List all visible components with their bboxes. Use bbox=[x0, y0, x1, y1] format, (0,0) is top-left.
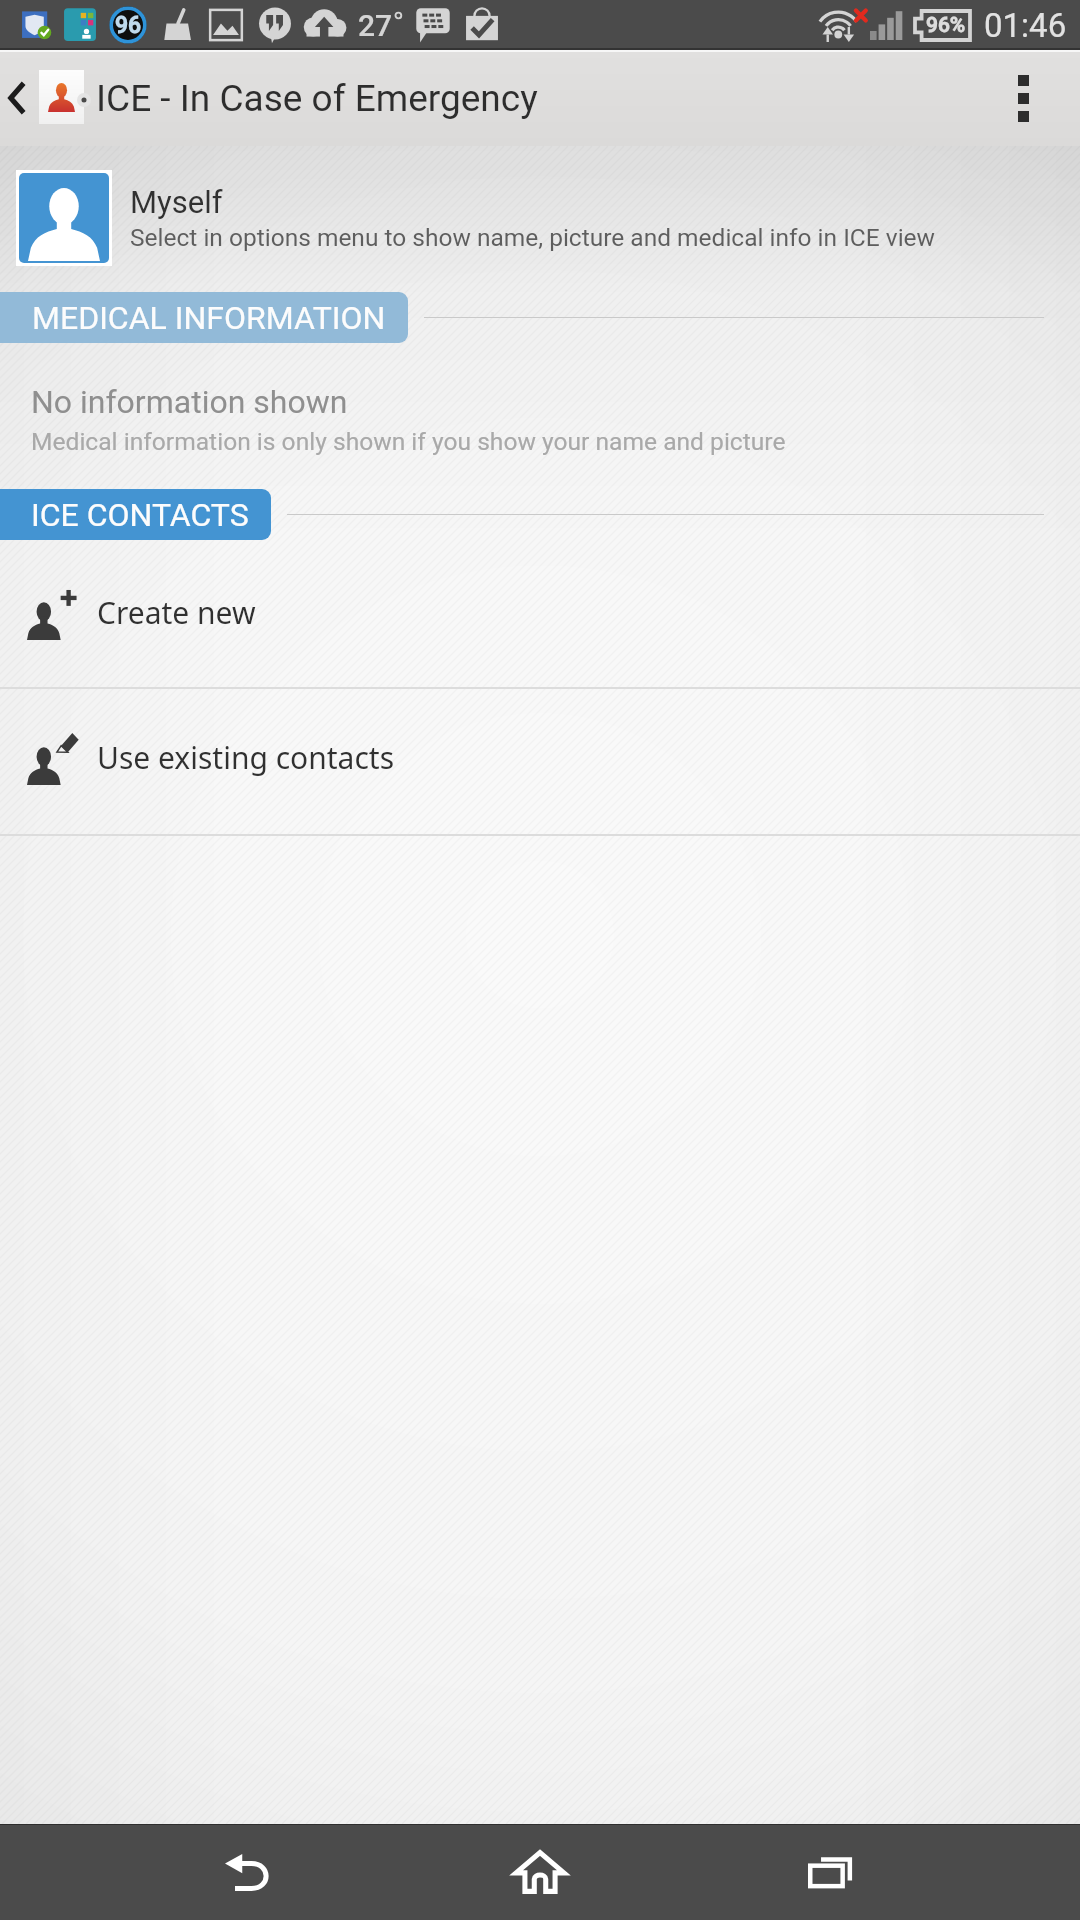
button[interactable]: Myself bbox=[0, 170, 1080, 266]
button[interactable]: Recent apps bbox=[685, 1824, 975, 1920]
staticText: ICE CONTACTS bbox=[31, 496, 249, 534]
staticText: 96 bbox=[115, 12, 142, 39]
staticText: Myself bbox=[130, 184, 223, 220]
button[interactable]: Home bbox=[395, 1824, 685, 1920]
button[interactable]: Navigate up bbox=[0, 50, 96, 146]
staticText: 27 bbox=[358, 8, 393, 43]
staticText: Select in options menu to show name, pic… bbox=[130, 223, 935, 252]
button[interactable]: More options bbox=[967, 50, 1080, 146]
staticText: Create new bbox=[97, 592, 256, 633]
staticText: Medical information is only shown if you… bbox=[31, 427, 786, 456]
staticText: ICE - In Case of Emergency bbox=[96, 77, 538, 120]
staticText: Use existing contacts bbox=[97, 737, 395, 778]
button[interactable]: Use existing contacts bbox=[0, 689, 1080, 834]
staticText: 01:46 bbox=[984, 6, 1067, 45]
button[interactable]: Back bbox=[105, 1824, 395, 1920]
staticText: 96% bbox=[926, 13, 966, 38]
button[interactable]: Create new bbox=[0, 560, 1080, 687]
staticText: No information shown bbox=[31, 383, 348, 421]
staticText: MEDICAL INFORMATION bbox=[32, 299, 386, 337]
